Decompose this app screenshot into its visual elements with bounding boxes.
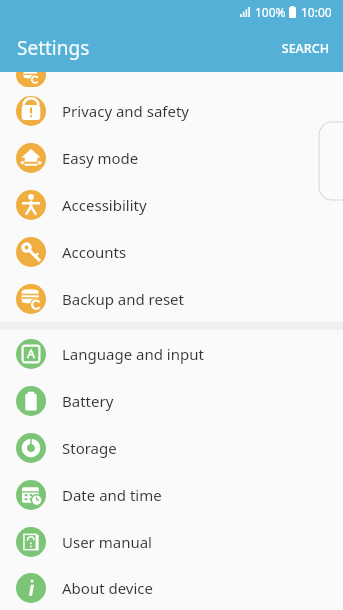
button[interactable]: Storage [0, 424, 343, 471]
button[interactable]: Language and input [0, 330, 343, 377]
button[interactable]: Backup and reset [0, 275, 343, 322]
button[interactable]: Accessibility [0, 181, 343, 228]
button[interactable]: Privacy and safety [0, 87, 343, 134]
button[interactable] [0, 63, 343, 87]
button[interactable]: Battery [0, 377, 343, 424]
button[interactable]: Date and time [0, 471, 343, 518]
button[interactable]: About device [0, 565, 343, 610]
staticText: 100% [255, 4, 286, 20]
staticText: Backup and reset [62, 289, 184, 309]
staticText: SEARCH [281, 40, 329, 57]
staticText: Privacy and safety [62, 101, 190, 121]
staticText: Battery [62, 391, 114, 411]
staticText: User manual [62, 532, 152, 552]
staticText: Accounts [62, 242, 127, 262]
button[interactable]: User manual [0, 518, 343, 565]
button[interactable]: Easy mode [0, 134, 343, 181]
staticText: Accessibility [62, 195, 147, 215]
staticText: About device [62, 578, 154, 598]
staticText: Date and time [62, 485, 162, 505]
staticText: Easy mode [62, 148, 139, 168]
button[interactable]: SEARCH [267, 32, 343, 65]
staticText: 10:00 [301, 4, 332, 20]
staticText: Language and input [62, 344, 204, 364]
staticText: Settings [17, 35, 90, 61]
button[interactable]: Accounts [0, 228, 343, 275]
staticText: Storage [62, 438, 117, 458]
